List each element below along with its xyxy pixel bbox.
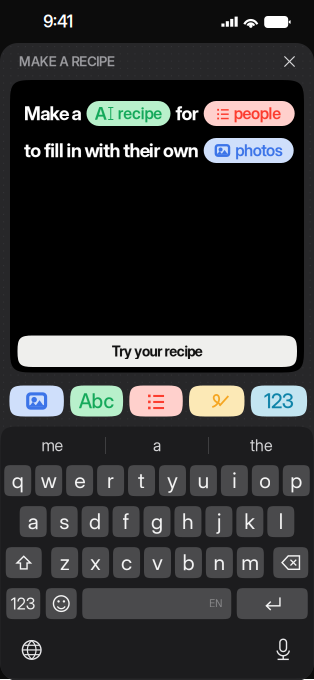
button[interactable]: Delete bbox=[273, 547, 308, 578]
staticText: j bbox=[217, 509, 221, 534]
staticText: recipe bbox=[118, 104, 162, 123]
button[interactable]: the bbox=[209, 430, 314, 460]
button[interactable]: p bbox=[283, 465, 310, 496]
staticText: z bbox=[60, 550, 70, 575]
staticText: q bbox=[12, 468, 24, 493]
staticText: n bbox=[213, 550, 225, 575]
button[interactable]: people bbox=[204, 101, 295, 126]
button[interactable]: a bbox=[106, 430, 208, 460]
staticText: x bbox=[90, 550, 101, 575]
staticText: MAKE A RECIPE bbox=[19, 54, 115, 69]
staticText: Try your recipe bbox=[112, 343, 203, 360]
button[interactable]: List bbox=[129, 385, 183, 416]
staticText: the bbox=[250, 436, 273, 455]
staticText: l bbox=[279, 509, 283, 534]
staticText: p bbox=[290, 468, 302, 493]
button[interactable]: x bbox=[82, 547, 109, 578]
staticText: a bbox=[153, 436, 161, 455]
staticText: y bbox=[167, 468, 178, 493]
button[interactable]: d bbox=[82, 506, 109, 537]
button[interactable]: 123 bbox=[251, 385, 307, 416]
button[interactable]: i bbox=[221, 465, 248, 496]
button[interactable]: q bbox=[4, 465, 31, 496]
button[interactable]: u bbox=[190, 465, 217, 496]
button[interactable]: c bbox=[113, 547, 140, 578]
staticText: a bbox=[28, 509, 39, 534]
button[interactable]: a bbox=[20, 506, 47, 537]
button[interactable]: w bbox=[35, 465, 62, 496]
staticText: to fill in with their own bbox=[24, 139, 199, 162]
button[interactable]: o bbox=[252, 465, 279, 496]
staticText: b bbox=[182, 550, 194, 575]
staticText: v bbox=[152, 550, 163, 575]
staticText: o bbox=[259, 468, 271, 493]
button[interactable]: z bbox=[51, 547, 78, 578]
button[interactable]: photos bbox=[204, 138, 294, 163]
staticText: e bbox=[74, 468, 85, 493]
button[interactable]: Switch keyboard bbox=[13, 631, 51, 669]
button[interactable]: me bbox=[0, 430, 105, 460]
button[interactable]: Abc bbox=[70, 385, 123, 416]
staticText: Make a bbox=[24, 102, 81, 125]
staticText: g bbox=[151, 509, 163, 534]
staticText: k bbox=[244, 509, 255, 534]
button[interactable]: m bbox=[237, 547, 264, 578]
button[interactable]: Space bbox=[82, 588, 231, 619]
button[interactable]: Close bbox=[277, 49, 302, 74]
staticText: u bbox=[197, 468, 209, 493]
button[interactable]: g bbox=[143, 506, 170, 537]
staticText: for bbox=[175, 102, 199, 125]
button[interactable]: j bbox=[205, 506, 232, 537]
staticText: w bbox=[41, 468, 57, 493]
button[interactable]: Return bbox=[237, 588, 308, 619]
button[interactable]: l bbox=[267, 506, 294, 537]
button[interactable]: Photos bbox=[9, 385, 64, 416]
staticText: m bbox=[241, 550, 259, 575]
button[interactable]: Shift bbox=[6, 547, 42, 578]
button[interactable]: e bbox=[66, 465, 93, 496]
staticText: d bbox=[89, 509, 101, 534]
staticText: t bbox=[138, 468, 145, 493]
button[interactable]: 123 bbox=[6, 588, 40, 619]
staticText: people bbox=[234, 104, 281, 123]
staticText: h bbox=[182, 509, 194, 534]
button[interactable]: h bbox=[174, 506, 201, 537]
button[interactable]: n bbox=[206, 547, 233, 578]
staticText: photos bbox=[235, 141, 283, 160]
button[interactable]: s bbox=[51, 506, 78, 537]
button[interactable]: Emoji bbox=[46, 588, 77, 619]
button[interactable]: f bbox=[112, 506, 139, 537]
staticText: f bbox=[122, 509, 129, 534]
staticText: A bbox=[95, 103, 107, 124]
staticText: me bbox=[41, 436, 63, 455]
staticText: i bbox=[232, 468, 236, 493]
staticText: 9:41 bbox=[43, 11, 73, 32]
staticText: c bbox=[121, 550, 132, 575]
staticText: 123 bbox=[11, 594, 36, 613]
button[interactable]: b bbox=[175, 547, 202, 578]
button[interactable]: t bbox=[128, 465, 155, 496]
button[interactable]: Try your recipe bbox=[17, 335, 297, 367]
staticText: EN bbox=[209, 598, 222, 610]
button[interactable]: k bbox=[236, 506, 263, 537]
staticText: r bbox=[107, 468, 114, 493]
staticText: Abc bbox=[79, 389, 114, 413]
button[interactable]: r bbox=[97, 465, 124, 496]
staticText: 123 bbox=[264, 389, 294, 413]
staticText: s bbox=[59, 509, 69, 534]
button[interactable]: Draw bbox=[189, 385, 244, 416]
button[interactable]: y bbox=[159, 465, 186, 496]
button[interactable]: A bbox=[86, 101, 170, 126]
button[interactable]: v bbox=[144, 547, 171, 578]
button[interactable]: Dictate bbox=[267, 630, 299, 670]
